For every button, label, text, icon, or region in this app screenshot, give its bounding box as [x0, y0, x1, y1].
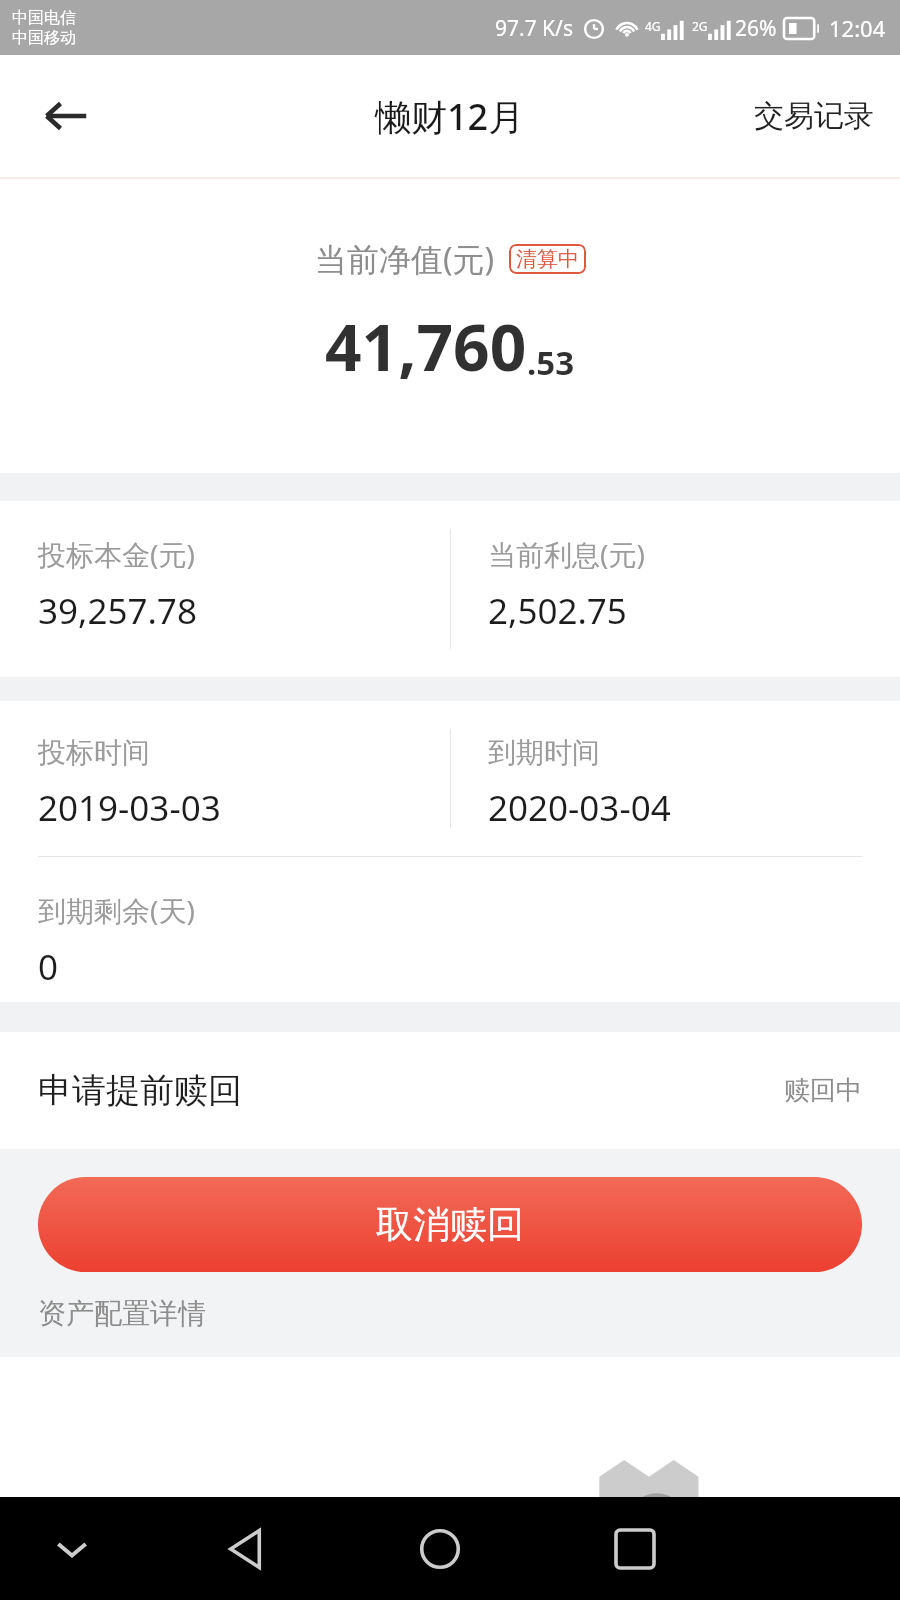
staticText: 资产配置详情 — [38, 1296, 206, 1331]
staticText: .53 — [527, 340, 575, 385]
button[interactable]: Back — [24, 74, 108, 158]
staticText: 懒财12月 — [375, 92, 525, 141]
staticText: 0 — [38, 943, 59, 991]
button[interactable]: 取消赎回 — [38, 1177, 862, 1272]
button[interactable]: Back — [210, 1514, 280, 1584]
button[interactable]: 申请提前赎回 — [0, 1032, 900, 1149]
staticText: 取消赎回 — [376, 1201, 524, 1248]
staticText: 到期时间 — [488, 735, 600, 770]
staticText: 赎回中 — [784, 1074, 862, 1107]
staticText: 当前净值(元) — [315, 237, 495, 281]
staticText: 中国移动 — [12, 28, 76, 48]
staticText: 交易记录 — [754, 97, 874, 135]
staticText: 到期剩余(天) — [38, 891, 195, 929]
staticText: 12:04 — [829, 13, 886, 43]
staticText: 2G — [692, 18, 708, 34]
staticText: 97.7 K/s — [495, 14, 573, 43]
staticText: 当前利息(元) — [488, 535, 645, 573]
staticText: 中国电信 — [12, 8, 76, 28]
button[interactable]: 交易记录 — [728, 77, 900, 155]
button[interactable]: Hide keyboard — [38, 1515, 106, 1583]
staticText: 清算中 — [516, 246, 579, 272]
button[interactable]: 资产配置详情 — [38, 1296, 206, 1331]
staticText: 2019-03-03 — [38, 784, 221, 832]
staticText: 4G — [645, 18, 661, 34]
staticText: 2,502.75 — [488, 587, 627, 635]
staticText: 投标时间 — [38, 735, 150, 770]
button[interactable]: Home — [405, 1514, 475, 1584]
staticText: 39,257.78 — [38, 587, 197, 635]
button[interactable]: Recent apps — [600, 1514, 670, 1584]
staticText: 26% — [735, 14, 777, 43]
staticText: 2020-03-04 — [488, 784, 671, 832]
staticText: 投标本金(元) — [38, 535, 195, 573]
staticText: 申请提前赎回 — [38, 1069, 242, 1112]
staticText: 41,760 — [325, 303, 527, 390]
